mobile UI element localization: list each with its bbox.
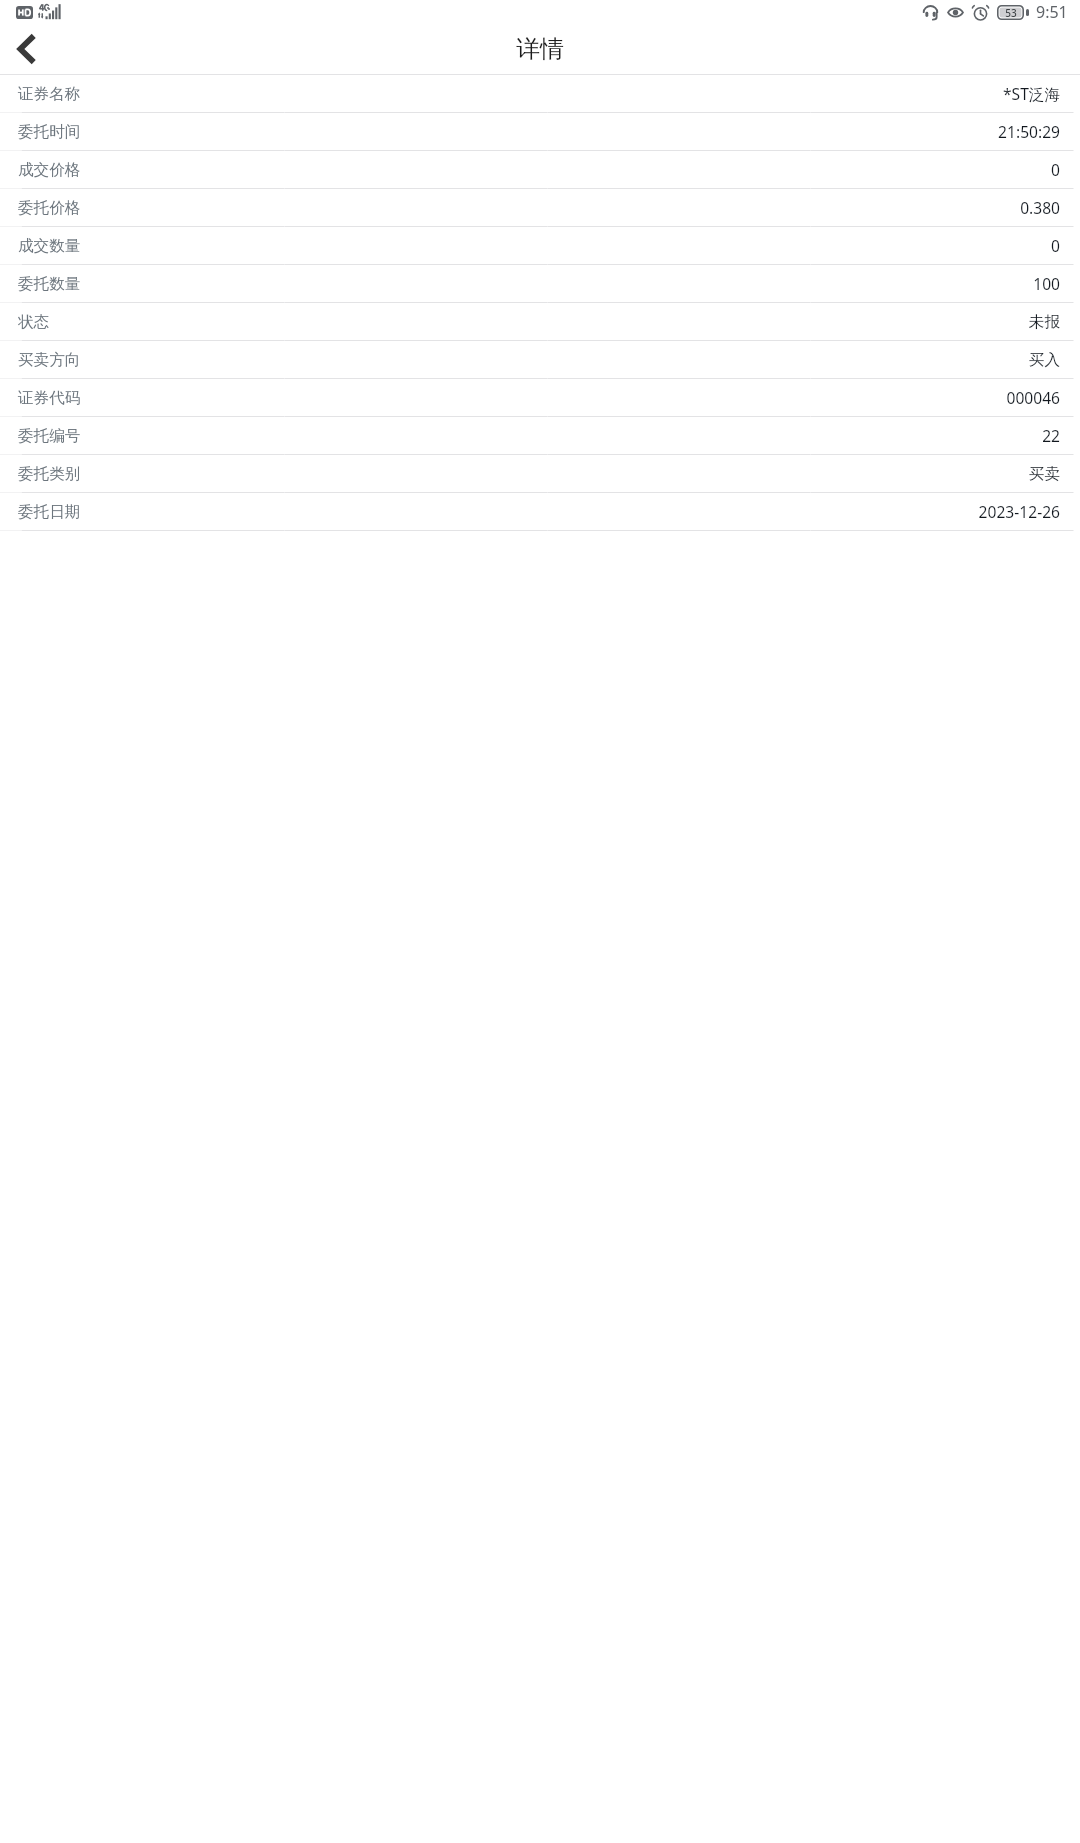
button[interactable]: 成交价格	[0, 151, 1080, 188]
staticText: 成交价格	[18, 160, 81, 180]
button[interactable]: 状态	[0, 303, 1080, 340]
staticText: 53	[1005, 6, 1017, 20]
staticText: 状态	[18, 312, 50, 332]
staticText: 委托价格	[18, 198, 81, 218]
button[interactable]: 成交数量	[0, 227, 1080, 264]
staticText: 买卖	[1028, 464, 1060, 484]
button[interactable]: 委托编号	[0, 417, 1080, 454]
staticText: 委托编号	[18, 426, 81, 446]
staticText: 买卖方向	[18, 350, 81, 370]
button[interactable]: 证券代码	[0, 379, 1080, 416]
staticText: 成交数量	[18, 236, 81, 256]
staticText: 0	[1051, 159, 1060, 180]
staticText: 买入	[1028, 350, 1060, 370]
staticText: 2023-12-26	[978, 501, 1060, 522]
staticText: 000046	[1006, 387, 1060, 408]
staticText: 证券名称	[18, 84, 81, 104]
staticText: *ST泛海	[1002, 83, 1060, 104]
button[interactable]: 委托数量	[0, 265, 1080, 302]
button[interactable]: 返回	[0, 24, 54, 74]
staticText: 21:50:29	[998, 121, 1060, 142]
button[interactable]: 证券名称	[0, 75, 1080, 112]
staticText: 委托数量	[18, 274, 81, 294]
staticText: 22	[1042, 425, 1060, 446]
button[interactable]: 委托日期	[0, 493, 1080, 530]
staticText: 9:51	[1036, 1, 1068, 23]
staticText: 未报	[1028, 312, 1060, 332]
staticText: 委托日期	[18, 502, 81, 522]
button[interactable]: 委托类别	[0, 455, 1080, 492]
button[interactable]: 委托价格	[0, 189, 1080, 226]
button[interactable]: 买卖方向	[0, 341, 1080, 378]
staticText: 委托类别	[18, 464, 81, 484]
staticText: 详情	[516, 34, 564, 64]
staticText: 证券代码	[18, 388, 81, 408]
staticText: 100	[1033, 273, 1060, 294]
staticText: 0	[1051, 235, 1060, 256]
button[interactable]: 委托时间	[0, 113, 1080, 150]
staticText: 委托时间	[18, 122, 81, 142]
staticText: 0.380	[1020, 197, 1060, 218]
